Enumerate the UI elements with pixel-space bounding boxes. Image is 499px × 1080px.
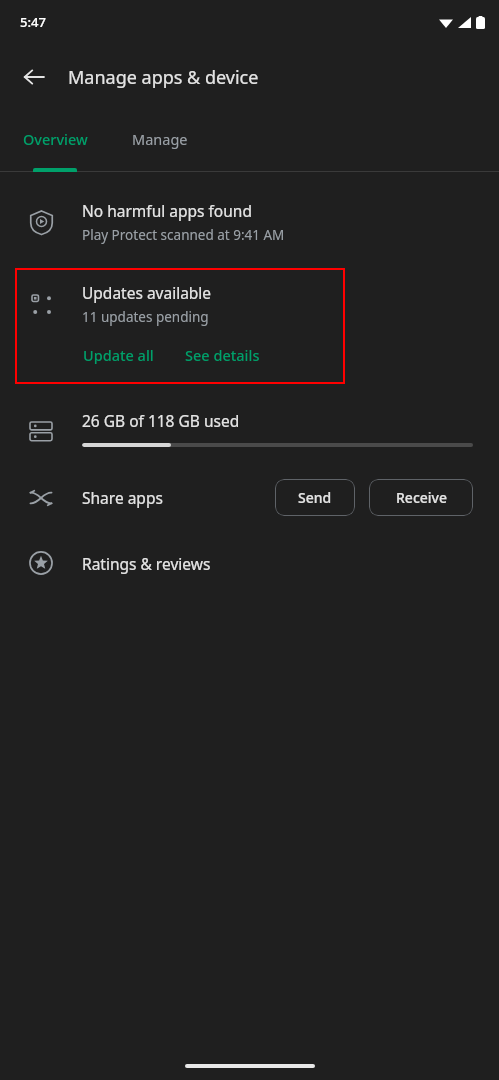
button[interactable]: Receive <box>369 479 473 516</box>
staticText: 11 updates pending <box>82 308 209 326</box>
staticText: Update all <box>83 345 154 365</box>
button[interactable]: 26 GB of 118 GB used <box>0 406 499 451</box>
staticText: Ratings & reviews <box>82 553 211 574</box>
staticText: Overview <box>23 129 88 149</box>
staticText: Manage apps & device <box>68 65 259 90</box>
button[interactable]: Send <box>275 479 355 516</box>
staticText: 26 GB of 118 GB used <box>82 410 240 431</box>
button[interactable]: Update all <box>82 342 155 368</box>
button[interactable]: Ratings & reviews <box>0 540 499 586</box>
button[interactable]: No harmful apps found <box>0 194 499 250</box>
button[interactable]: See details <box>184 342 261 368</box>
staticText: Receive <box>396 488 447 507</box>
staticText: Play Protect scanned at 9:41 AM <box>82 226 285 244</box>
button[interactable]: Overview <box>0 110 110 168</box>
button[interactable]: Back <box>12 55 56 99</box>
staticText: Updates available <box>82 282 212 303</box>
staticText: Manage <box>132 129 188 149</box>
staticText: See details <box>185 345 260 365</box>
button[interactable]: Manage <box>110 110 210 168</box>
staticText: Send <box>298 488 332 507</box>
staticText: Share apps <box>82 487 163 508</box>
staticText: No harmful apps found <box>82 200 252 221</box>
button[interactable]: Updates available <box>15 268 345 384</box>
staticText: 5:47 <box>20 13 46 31</box>
